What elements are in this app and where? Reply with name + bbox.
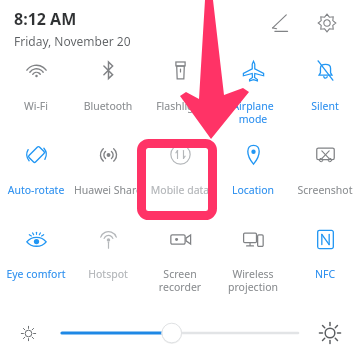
staticText: Location: [217, 183, 289, 197]
staticText: Auto-rotate: [0, 183, 72, 197]
button[interactable]: Increase brightness: [314, 317, 346, 349]
button[interactable]: Decrease brightness: [12, 317, 44, 349]
button[interactable]: Mobile data: [144, 141, 216, 197]
button[interactable]: Screen recorder: [144, 226, 216, 294]
staticText: 8:12 AM: [14, 8, 77, 30]
staticText: Huawei Share: [72, 183, 144, 197]
button[interactable]: Screenshot: [289, 141, 360, 197]
button[interactable]: Flashlight: [144, 57, 216, 113]
staticText: Wireless projection: [217, 267, 289, 294]
staticText: Wi-Fi: [0, 99, 72, 113]
button[interactable]: NFC: [289, 226, 360, 281]
staticText: Flashlight: [144, 99, 216, 113]
staticText: Screenshot: [289, 183, 360, 197]
staticText: Bluetooth: [72, 99, 144, 113]
button[interactable]: Eye comfort: [0, 226, 72, 281]
button[interactable]: Airplane mode: [217, 57, 289, 126]
button[interactable]: Silent: [289, 57, 360, 113]
staticText: Silent: [289, 99, 360, 113]
staticText: Friday, November 20: [14, 33, 131, 49]
button[interactable]: Wi-Fi: [0, 57, 72, 113]
button[interactable]: Hotspot: [72, 226, 144, 281]
staticText: NFC: [289, 267, 360, 281]
staticText: Eye comfort: [0, 267, 72, 281]
staticText: Airplane mode: [217, 99, 289, 126]
button[interactable]: Huawei Share: [72, 141, 144, 197]
staticText: Mobile data: [144, 183, 216, 197]
button[interactable]: Brightness: [56, 318, 304, 348]
button[interactable]: Bluetooth: [72, 57, 144, 113]
button[interactable]: Edit: [264, 6, 298, 40]
button[interactable]: Auto-rotate: [0, 141, 72, 197]
button[interactable]: Location: [217, 141, 289, 197]
button[interactable]: Settings: [310, 6, 344, 40]
button[interactable]: Wireless projection: [217, 226, 289, 294]
staticText: Hotspot: [72, 267, 144, 281]
staticText: Screen recorder: [144, 267, 216, 294]
